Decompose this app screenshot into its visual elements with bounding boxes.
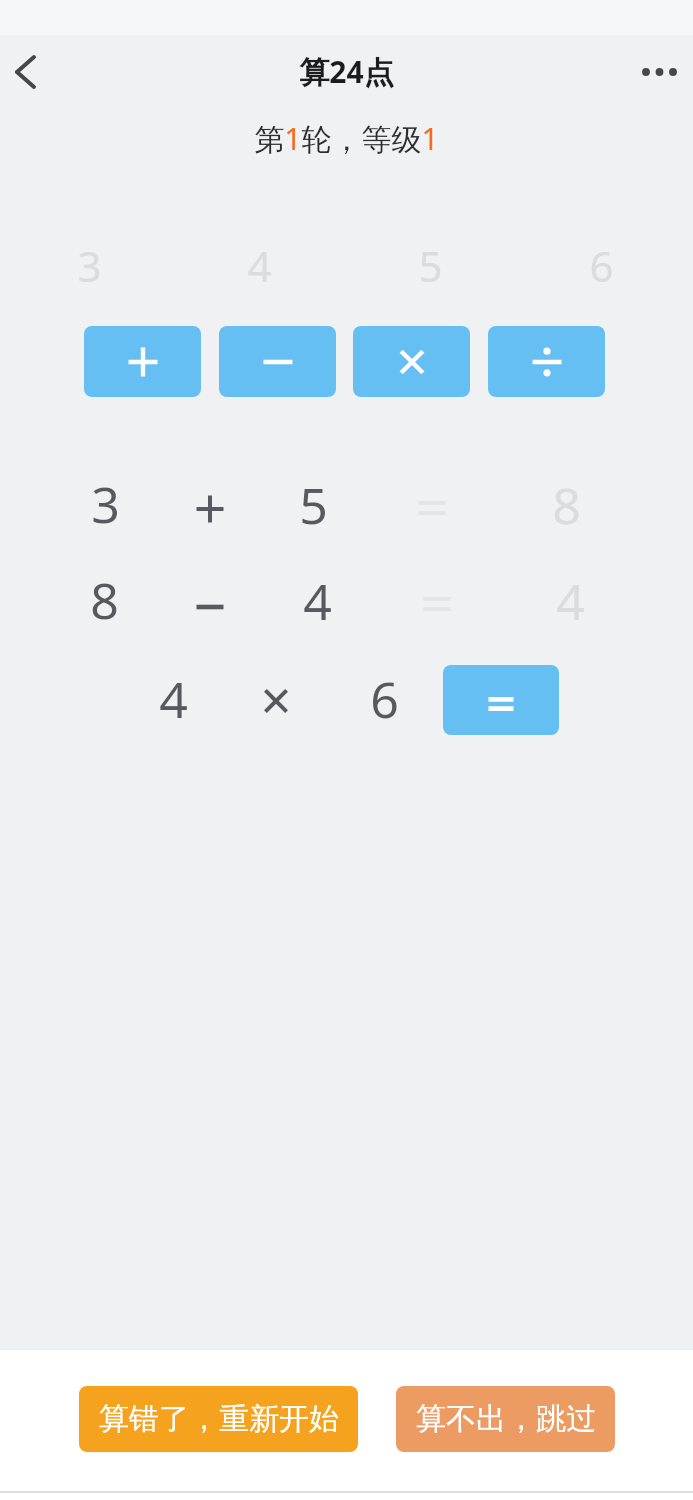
staticText: 3 xyxy=(77,237,102,294)
staticText: 8 xyxy=(90,566,119,634)
staticText: 6 xyxy=(589,237,614,294)
staticText: 5 xyxy=(299,471,328,539)
button[interactable] xyxy=(4,50,52,98)
staticText: 8 xyxy=(552,471,581,539)
staticText: 算不出，跳过 xyxy=(416,1400,596,1438)
staticText: 3 xyxy=(91,470,120,538)
button[interactable] xyxy=(219,326,336,397)
button[interactable] xyxy=(632,48,687,96)
staticText: 6 xyxy=(370,665,399,733)
staticText: 4 xyxy=(556,567,585,635)
staticText: 4 xyxy=(159,665,188,733)
button[interactable] xyxy=(84,326,201,397)
staticText: 4 xyxy=(247,237,272,294)
button[interactable] xyxy=(443,665,559,735)
button[interactable] xyxy=(353,326,470,397)
staticText: 算24点 xyxy=(299,51,394,92)
staticText: 4 xyxy=(303,567,332,635)
button[interactable]: 算错了，重新开始 xyxy=(79,1386,358,1452)
staticText: 第1轮，等级1 xyxy=(254,118,439,159)
button[interactable]: 算不出，跳过 xyxy=(396,1386,615,1452)
staticText: 5 xyxy=(418,237,443,294)
button[interactable] xyxy=(488,326,605,397)
staticText: 算错了，重新开始 xyxy=(99,1400,339,1438)
